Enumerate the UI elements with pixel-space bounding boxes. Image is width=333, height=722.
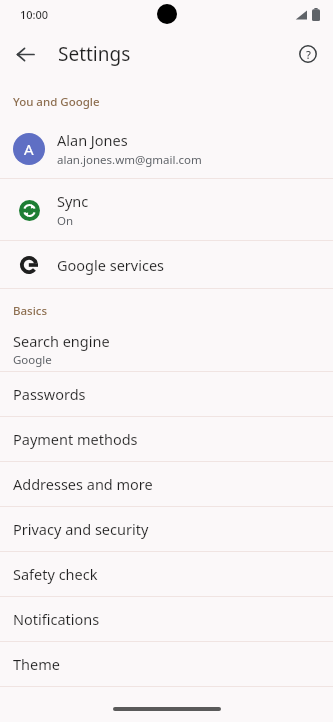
- staticText: Search engine: [13, 331, 110, 351]
- staticText: Settings: [58, 41, 131, 67]
- staticText: Sync: [57, 191, 89, 211]
- staticText: Google services: [57, 255, 165, 275]
- staticText: Privacy and security: [13, 519, 149, 539]
- button[interactable]: Sync: [0, 179, 333, 240]
- button[interactable]: Search engine: [0, 327, 333, 371]
- staticText: You and Google: [13, 94, 100, 110]
- staticText: Notifications: [13, 609, 100, 629]
- staticText: A: [24, 139, 34, 159]
- button[interactable]: A: [0, 120, 333, 178]
- staticText: On: [57, 213, 74, 229]
- staticText: Addresses and more: [13, 474, 153, 494]
- button[interactable]: Back: [6, 35, 44, 73]
- button[interactable]: Payment methods: [0, 417, 333, 461]
- button[interactable]: Passwords: [0, 372, 333, 416]
- staticText: alan.jones.wm@gmail.com: [57, 152, 202, 168]
- staticText: Alan Jones: [57, 130, 128, 150]
- button[interactable]: Notifications: [0, 597, 333, 641]
- button[interactable]: Google services: [0, 241, 333, 288]
- staticText: Theme: [13, 654, 60, 674]
- button[interactable]: Privacy and security: [0, 507, 333, 551]
- button[interactable]: Help: [289, 35, 327, 73]
- staticText: Passwords: [13, 384, 86, 404]
- staticText: 10:00: [20, 7, 49, 22]
- button[interactable]: Safety check: [0, 552, 333, 596]
- staticText: ?: [306, 47, 311, 62]
- button[interactable]: Theme: [0, 642, 333, 686]
- staticText: Basics: [13, 303, 48, 319]
- staticText: Safety check: [13, 564, 98, 584]
- button[interactable]: Addresses and more: [0, 462, 333, 506]
- staticText: Google: [13, 352, 52, 368]
- staticText: Payment methods: [13, 429, 138, 449]
